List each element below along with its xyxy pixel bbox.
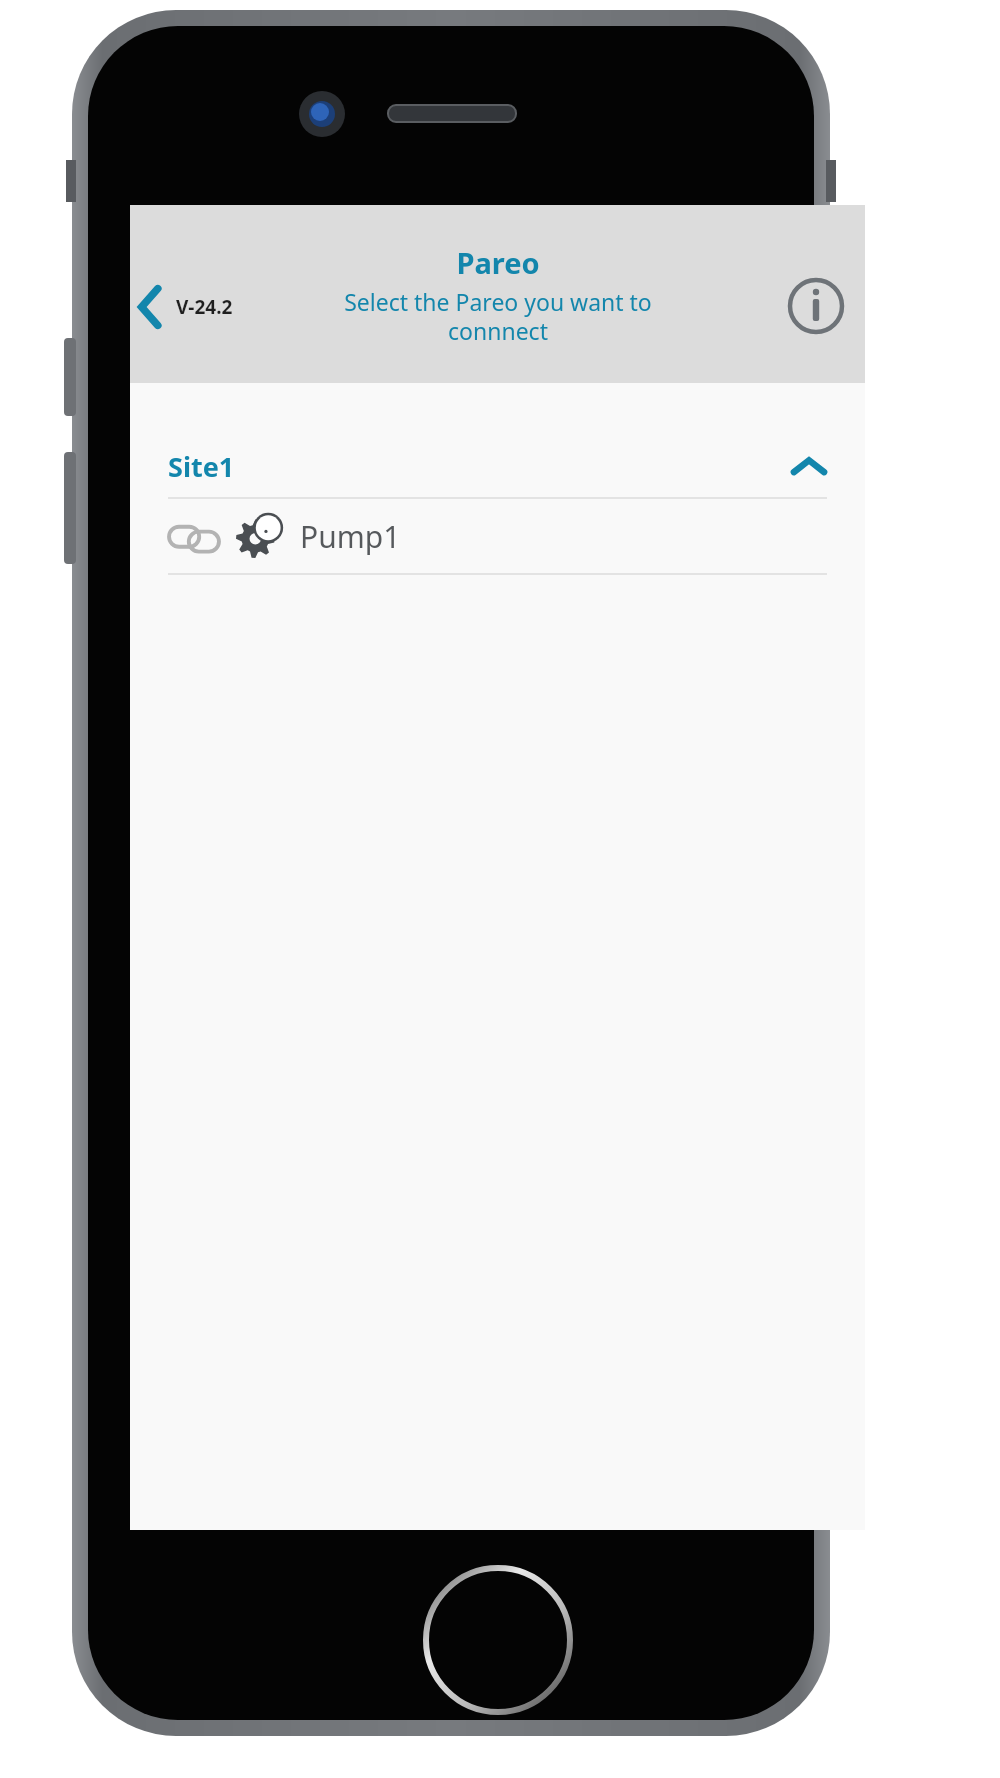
staticText: Pareo (456, 243, 540, 282)
button[interactable]: Back (130, 276, 243, 338)
other: Configure (236, 513, 282, 559)
button[interactable]: Information (785, 275, 847, 337)
button[interactable]: Site1 (168, 435, 827, 497)
staticText: Select the Pareo you want to connnect (333, 286, 663, 347)
other: Link status (168, 516, 220, 556)
staticText: Pump1 (300, 516, 401, 557)
other: Collapse (791, 455, 827, 477)
other: Back (136, 284, 164, 330)
staticText: V-24.2 (176, 294, 233, 320)
button[interactable]: Link status (168, 499, 827, 573)
staticText: Site1 (168, 448, 235, 485)
other: Home (418, 1560, 578, 1720)
